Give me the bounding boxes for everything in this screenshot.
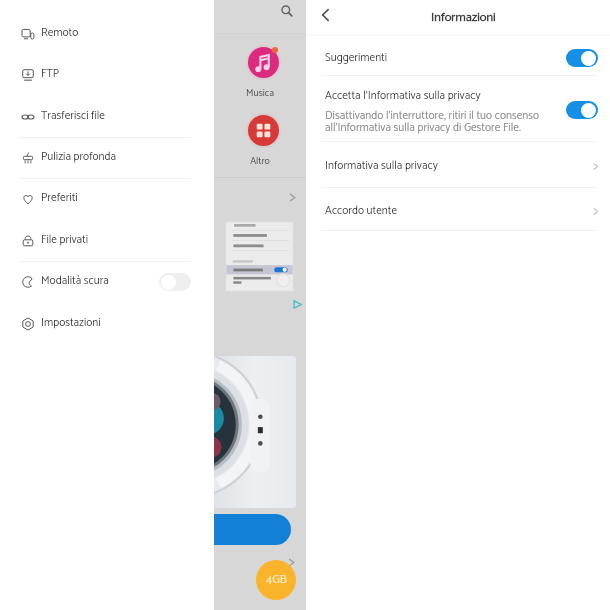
staticText: Trasferisci file [41,107,105,126]
button[interactable]: Altro [248,115,279,146]
button[interactable]: Accetta l'Informativa sulla privacy [306,79,610,141]
staticText: Altro [214,153,306,169]
staticText: Suggerimenti [325,49,388,68]
button[interactable]: 4GB [256,560,296,600]
button[interactable]: Preferiti [0,178,214,219]
staticText: Preferiti [41,189,78,208]
staticText: Informativa sulla privacy [325,157,438,176]
button[interactable]: Trasferisci file [0,96,214,137]
button[interactable]: Cerca [281,5,293,17]
button[interactable]: File privati [0,220,214,261]
button[interactable]: Indietro [317,6,335,24]
staticText: Impostazioni [41,314,101,333]
button[interactable]: Informativa sulla privacy [306,145,610,187]
staticText: Musica [214,85,306,101]
button[interactable]: Suggerimenti [306,39,610,77]
staticText: Modalità scura [41,272,109,291]
button[interactable]: Installa [214,514,291,545]
staticText: Pulizia profonda [41,148,117,167]
staticText: Accetta l'Informativa sulla privacy [325,87,481,106]
button[interactable]: Modalità scura [0,261,214,302]
staticText: FTP [41,65,60,84]
button[interactable]: Accordo utente [306,190,610,232]
button[interactable]: Impostazioni [0,303,214,344]
button[interactable]: Remoto [0,13,214,54]
staticText: File privati [41,231,89,250]
staticText: Accordo utente [325,202,398,221]
staticText: Disattivando l'interruttore, ritiri il t… [325,107,555,137]
button[interactable]: Musica [248,47,279,78]
staticText: Informazioni [431,7,496,28]
staticText: Remoto [41,24,79,43]
staticText: 4GB [266,570,287,590]
button[interactable]: FTP [0,54,214,95]
button[interactable]: Pulizia profonda [0,137,214,178]
